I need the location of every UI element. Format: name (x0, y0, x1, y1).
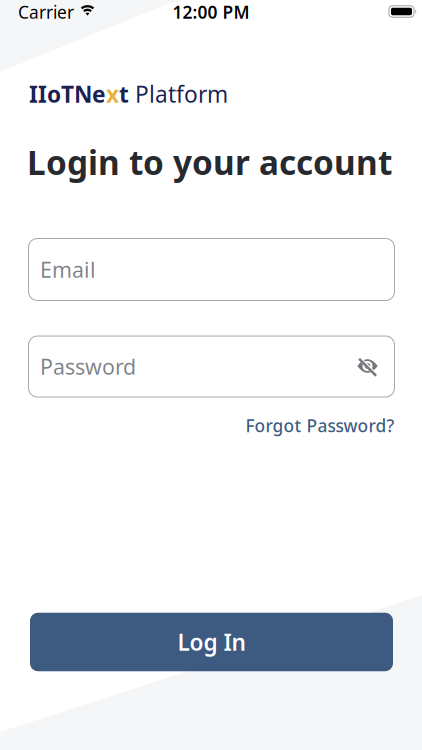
staticText: Password (40, 352, 136, 381)
staticText: Login to your account (27, 140, 392, 184)
staticText: Forgot Password? (245, 414, 394, 437)
button[interactable]: Forgot Password? (245, 414, 394, 437)
staticText: t (119, 79, 129, 109)
staticText: 12:00 PM (172, 0, 249, 23)
button[interactable]: Log In (30, 613, 393, 671)
staticText: x (106, 79, 119, 109)
staticText: Log In (177, 627, 245, 657)
staticText: IIoTNe (29, 79, 106, 109)
staticText: Email (40, 255, 96, 284)
staticText: Carrier (18, 0, 74, 23)
staticText: Platform (129, 79, 228, 109)
button[interactable]: Email (28, 238, 394, 300)
button[interactable]: Password (28, 336, 394, 397)
